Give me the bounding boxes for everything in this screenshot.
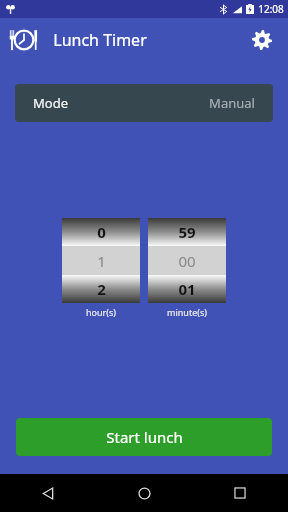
button[interactable]: Mode	[15, 84, 273, 122]
button[interactable]: Back	[0, 474, 96, 512]
staticText: 0	[97, 222, 106, 242]
button[interactable]: Recent apps	[192, 474, 288, 512]
staticText: Mode	[33, 94, 68, 112]
staticText: Start lunch	[106, 427, 183, 447]
button[interactable]: Settings	[240, 18, 284, 62]
staticText: 2	[97, 279, 106, 299]
button[interactable]: Home	[96, 474, 192, 512]
staticText: 12:08	[258, 2, 284, 16]
staticText: 00	[178, 251, 196, 271]
staticText: 01	[178, 279, 196, 299]
staticText: 1	[97, 251, 106, 271]
staticText: minute(s)	[167, 306, 207, 318]
button[interactable]: 59	[148, 218, 226, 303]
staticText: hour(s)	[86, 306, 116, 318]
button[interactable]: 0	[62, 218, 140, 303]
button[interactable]: Start lunch	[16, 418, 272, 456]
staticText: 59	[178, 222, 196, 242]
staticText: Lunch Timer	[53, 29, 147, 51]
staticText: Manual	[209, 94, 255, 112]
